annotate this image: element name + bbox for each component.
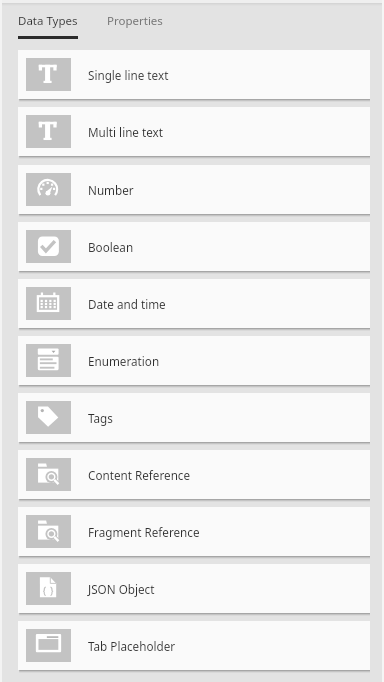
button[interactable]: Date and time (18, 279, 370, 328)
staticText: Data Types (18, 13, 78, 29)
button[interactable]: Properties (89, 6, 174, 36)
button[interactable]: Single line text (18, 50, 370, 99)
button[interactable]: Tags (18, 393, 370, 442)
staticText: Enumeration (88, 353, 160, 369)
button[interactable]: Fragment Reference (18, 507, 370, 556)
staticText: Fragment Reference (88, 524, 200, 540)
staticText: Number (88, 182, 134, 198)
staticText: Multi line text (88, 124, 163, 140)
staticText: Boolean (88, 239, 134, 255)
staticText: Content Reference (88, 467, 191, 483)
button[interactable]: Boolean (18, 222, 370, 271)
button[interactable]: Data Types (0, 6, 89, 39)
staticText: Tags (88, 410, 113, 426)
staticText: Date and time (88, 296, 166, 312)
staticText: Single line text (88, 67, 169, 83)
button[interactable]: Enumeration (18, 336, 370, 385)
button[interactable]: JSON Object (18, 564, 370, 613)
button[interactable]: Tab Placeholder (18, 621, 370, 670)
staticText: Properties (107, 13, 163, 29)
button[interactable]: Number (18, 165, 370, 214)
staticText: JSON Object (88, 581, 155, 597)
button[interactable]: Content Reference (18, 450, 370, 499)
staticText: Tab Placeholder (88, 638, 176, 654)
button[interactable]: Multi line text (18, 107, 370, 156)
